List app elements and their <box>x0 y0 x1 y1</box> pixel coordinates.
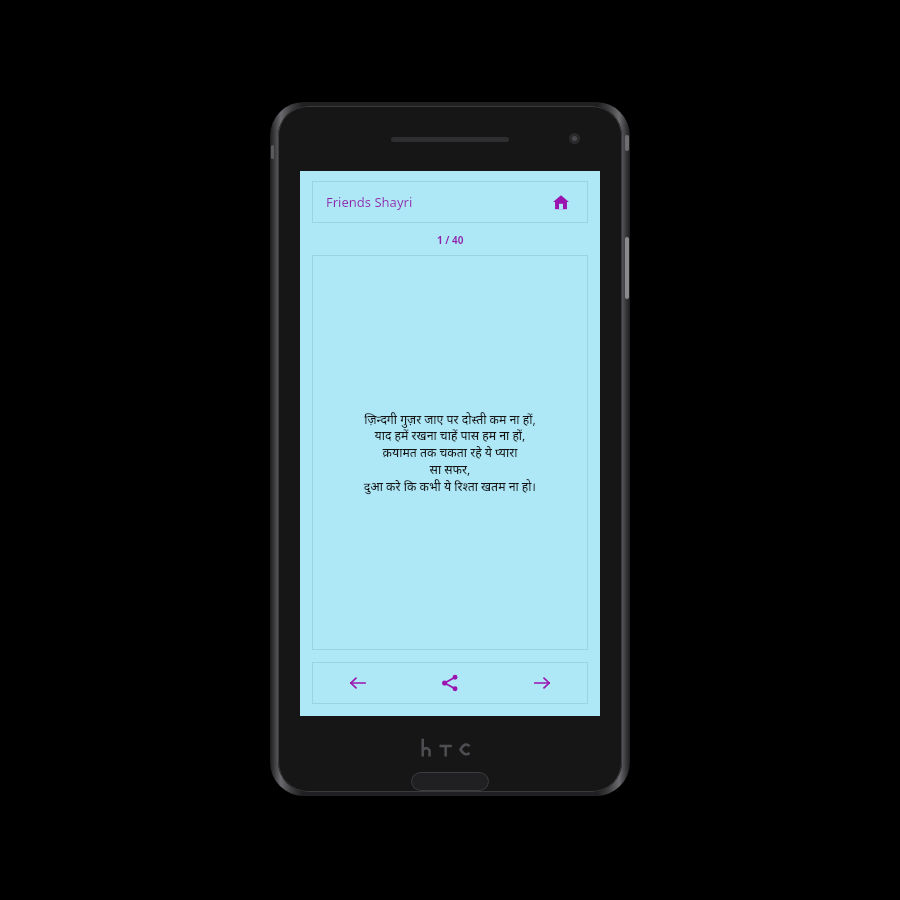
button[interactable]: Home <box>546 187 576 217</box>
staticText: Friends Shayri <box>326 193 413 211</box>
button[interactable]: Previous <box>312 662 404 704</box>
button[interactable]: Home button <box>411 772 489 791</box>
staticText: 1 / 40 <box>437 233 464 247</box>
button[interactable]: Friends Shayri <box>312 181 588 223</box>
button[interactable]: ज़िन्दगी गुज़र जाए पर दोस्ती कम ना हों, … <box>312 255 588 650</box>
button[interactable]: Next <box>496 662 588 704</box>
staticText: ज़िन्दगी गुज़र जाए पर दोस्ती कम ना हों, … <box>318 411 582 495</box>
button[interactable]: Share <box>404 662 496 704</box>
